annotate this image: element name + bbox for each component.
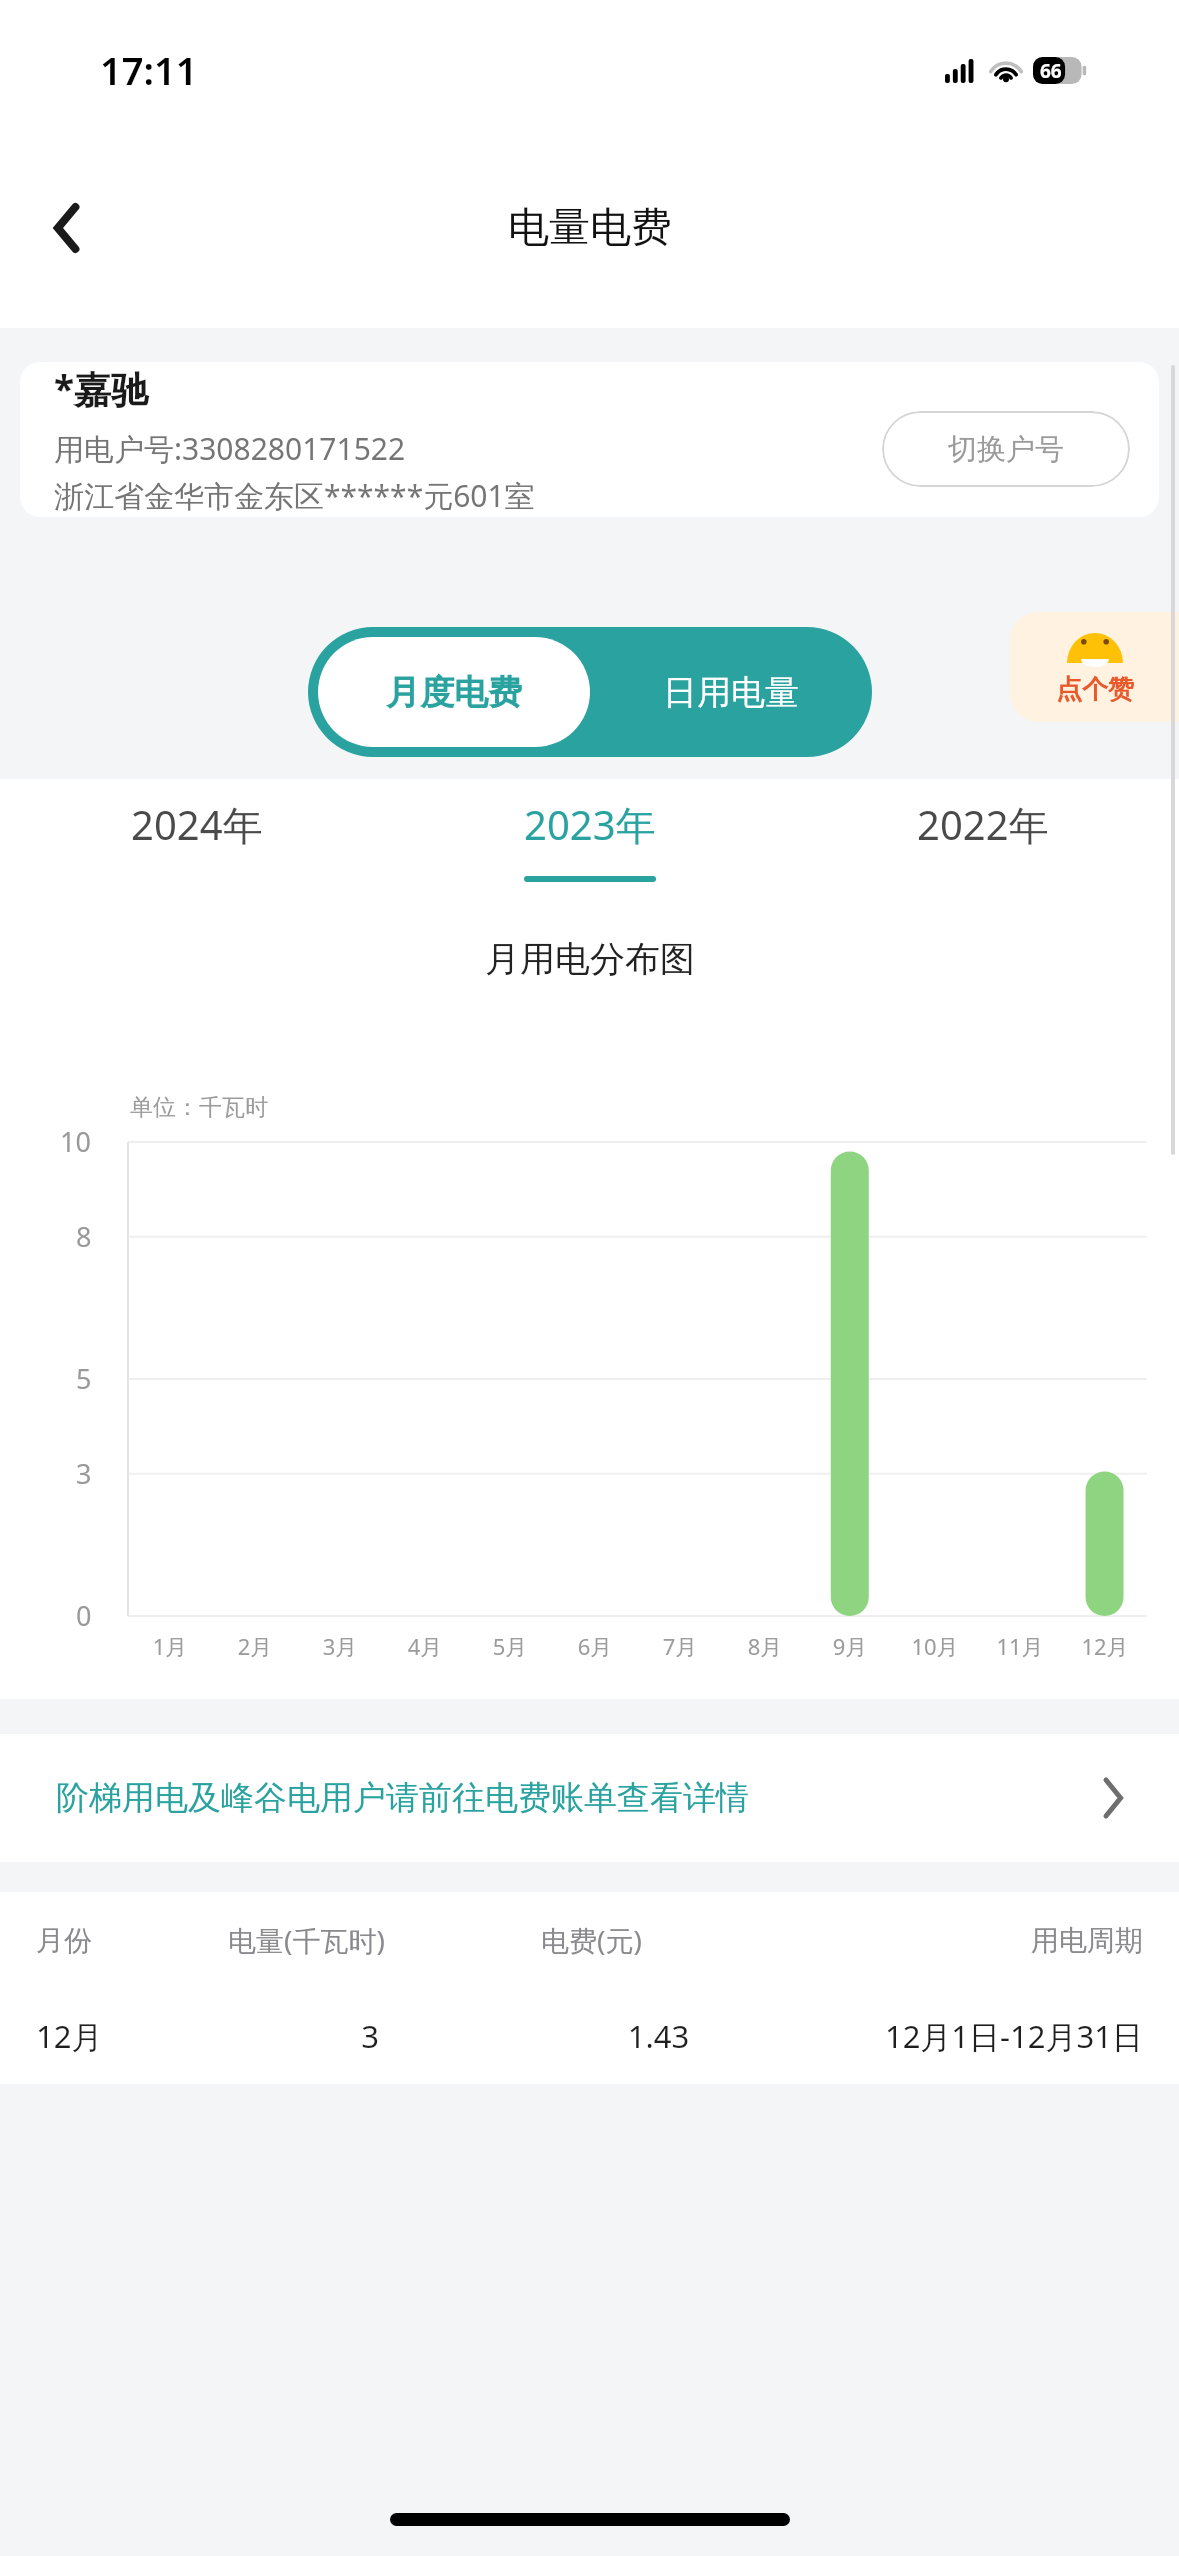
staticText: 点个赞 [1056,673,1134,706]
button[interactable]: Back [34,195,100,261]
button[interactable]: 日用电量 [590,627,872,757]
staticText: 10 [60,1123,91,1160]
button[interactable]: 12月 [36,1988,1143,2084]
button[interactable]: *嘉驰 [20,362,1159,517]
staticText: 17:11 [100,44,198,96]
staticText: 单位：千瓦时 [130,1093,268,1122]
staticText: 电量电费 [508,202,672,254]
staticText: 月度电费 [386,671,522,714]
staticText: 5月 [482,1631,538,1661]
staticText: 切换户号 [948,431,1064,468]
button[interactable]: 阶梯用电及峰谷电用户请前往电费账单查看详情 [0,1734,1179,1862]
staticText: 3 [76,1455,92,1492]
button[interactable]: 2023年 [393,779,786,909]
staticText: 3 [220,2015,520,2057]
staticText: 1.43 [520,2015,797,2057]
button[interactable]: 点个赞 [1010,612,1179,722]
staticText: 阶梯用电及峰谷电用户请前往电费账单查看详情 [56,1777,1103,1819]
staticText: 12月 [1077,1631,1133,1661]
button[interactable]: 2024年 [0,779,393,909]
staticText: 2024年 [131,797,263,852]
staticText: 电费(元) [541,1921,830,1959]
staticText: 1月 [142,1631,198,1661]
staticText: 8 [76,1218,92,1255]
staticText: 月份 [36,1923,228,1958]
staticText: 2023年 [524,797,656,852]
staticText: 4月 [397,1631,453,1661]
staticText: 10月 [907,1631,963,1661]
staticText: 5 [76,1360,92,1397]
staticText: 11月 [992,1631,1048,1661]
staticText: 浙江省金华市金东区******元601室 [54,475,535,516]
staticText: 月用电分布图 [485,937,695,981]
staticText: 3月 [312,1631,368,1661]
staticText: 66 [1040,58,1062,84]
button[interactable]: 月度电费 [318,637,590,747]
staticText: 2月 [227,1631,283,1661]
staticText: 用电户号:3308280171522 [54,428,406,469]
staticText: 12月1日-12月31日 [797,2015,1143,2057]
staticText: *嘉驰 [54,363,149,414]
staticText: 用电周期 [830,1923,1143,1958]
button[interactable]: 2022年 [786,779,1179,909]
button[interactable]: 切换户号 [882,411,1130,487]
staticText: 6月 [567,1631,623,1661]
staticText: 0 [76,1597,92,1634]
staticText: 2022年 [917,797,1049,852]
staticText: 8月 [737,1631,793,1661]
staticText: 12月 [36,2015,220,2057]
staticText: 日用电量 [663,671,799,714]
staticText: 电量(千瓦时) [228,1921,541,1959]
staticText: 9月 [822,1631,878,1661]
staticText: 7月 [652,1631,708,1661]
